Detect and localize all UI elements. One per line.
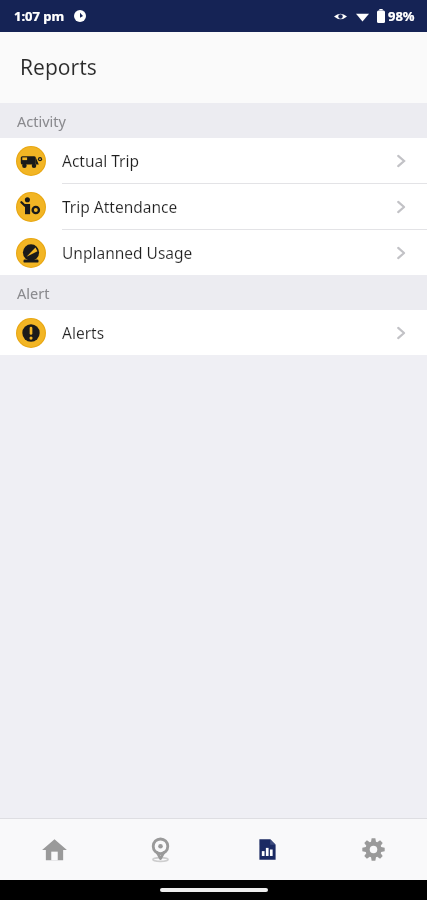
button[interactable]: Unplanned Usage	[0, 230, 427, 275]
button[interactable]: Trip Attendance	[0, 184, 427, 229]
staticText: Reports	[20, 53, 97, 82]
button[interactable]: Actual Trip	[0, 138, 427, 183]
button[interactable]: Map	[107, 819, 213, 880]
button[interactable]: Settings	[320, 819, 426, 880]
staticText: Alerts	[62, 322, 394, 343]
button[interactable]: Alerts	[0, 310, 427, 355]
button[interactable]: Home	[1, 819, 107, 880]
button[interactable]: Reports	[214, 819, 320, 880]
staticText: Actual Trip	[62, 150, 394, 171]
staticText: 1:07 pm	[14, 7, 65, 25]
staticText: Activity	[17, 111, 66, 131]
staticText: Trip Attendance	[62, 196, 394, 217]
staticText: Alert	[17, 283, 50, 303]
staticText: Unplanned Usage	[62, 242, 394, 263]
staticText: 98%	[388, 7, 415, 25]
